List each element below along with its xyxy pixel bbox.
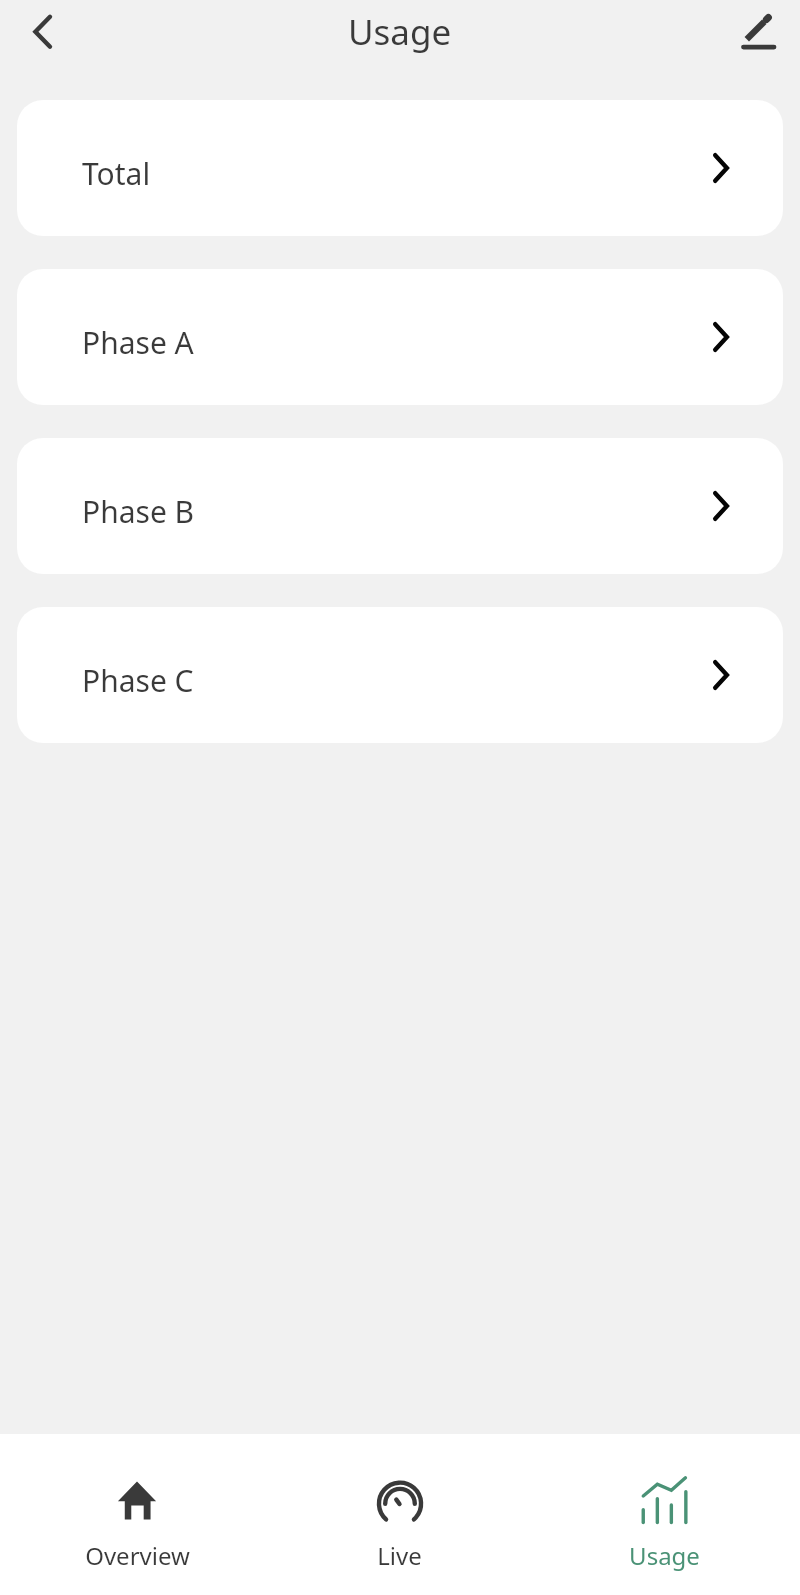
button[interactable]: Phase C bbox=[17, 607, 783, 743]
staticText: Phase C bbox=[82, 660, 194, 701]
staticText: Total bbox=[82, 153, 151, 194]
staticText: Phase B bbox=[82, 491, 195, 532]
button[interactable]: Phase A bbox=[17, 269, 783, 405]
staticText: Live bbox=[377, 1539, 422, 1572]
staticText: Phase A bbox=[82, 322, 194, 363]
button[interactable]: Total bbox=[17, 100, 783, 236]
button[interactable]: Back bbox=[15, 6, 67, 58]
button[interactable]: Overview bbox=[6, 1434, 268, 1595]
button[interactable]: Usage bbox=[531, 1434, 794, 1595]
button[interactable]: Phase B bbox=[17, 438, 783, 574]
staticText: Usage bbox=[348, 8, 452, 56]
staticText: Overview bbox=[85, 1539, 190, 1572]
button[interactable]: Live bbox=[268, 1434, 531, 1595]
button[interactable]: Edit bbox=[732, 5, 784, 57]
staticText: Usage bbox=[629, 1539, 700, 1572]
